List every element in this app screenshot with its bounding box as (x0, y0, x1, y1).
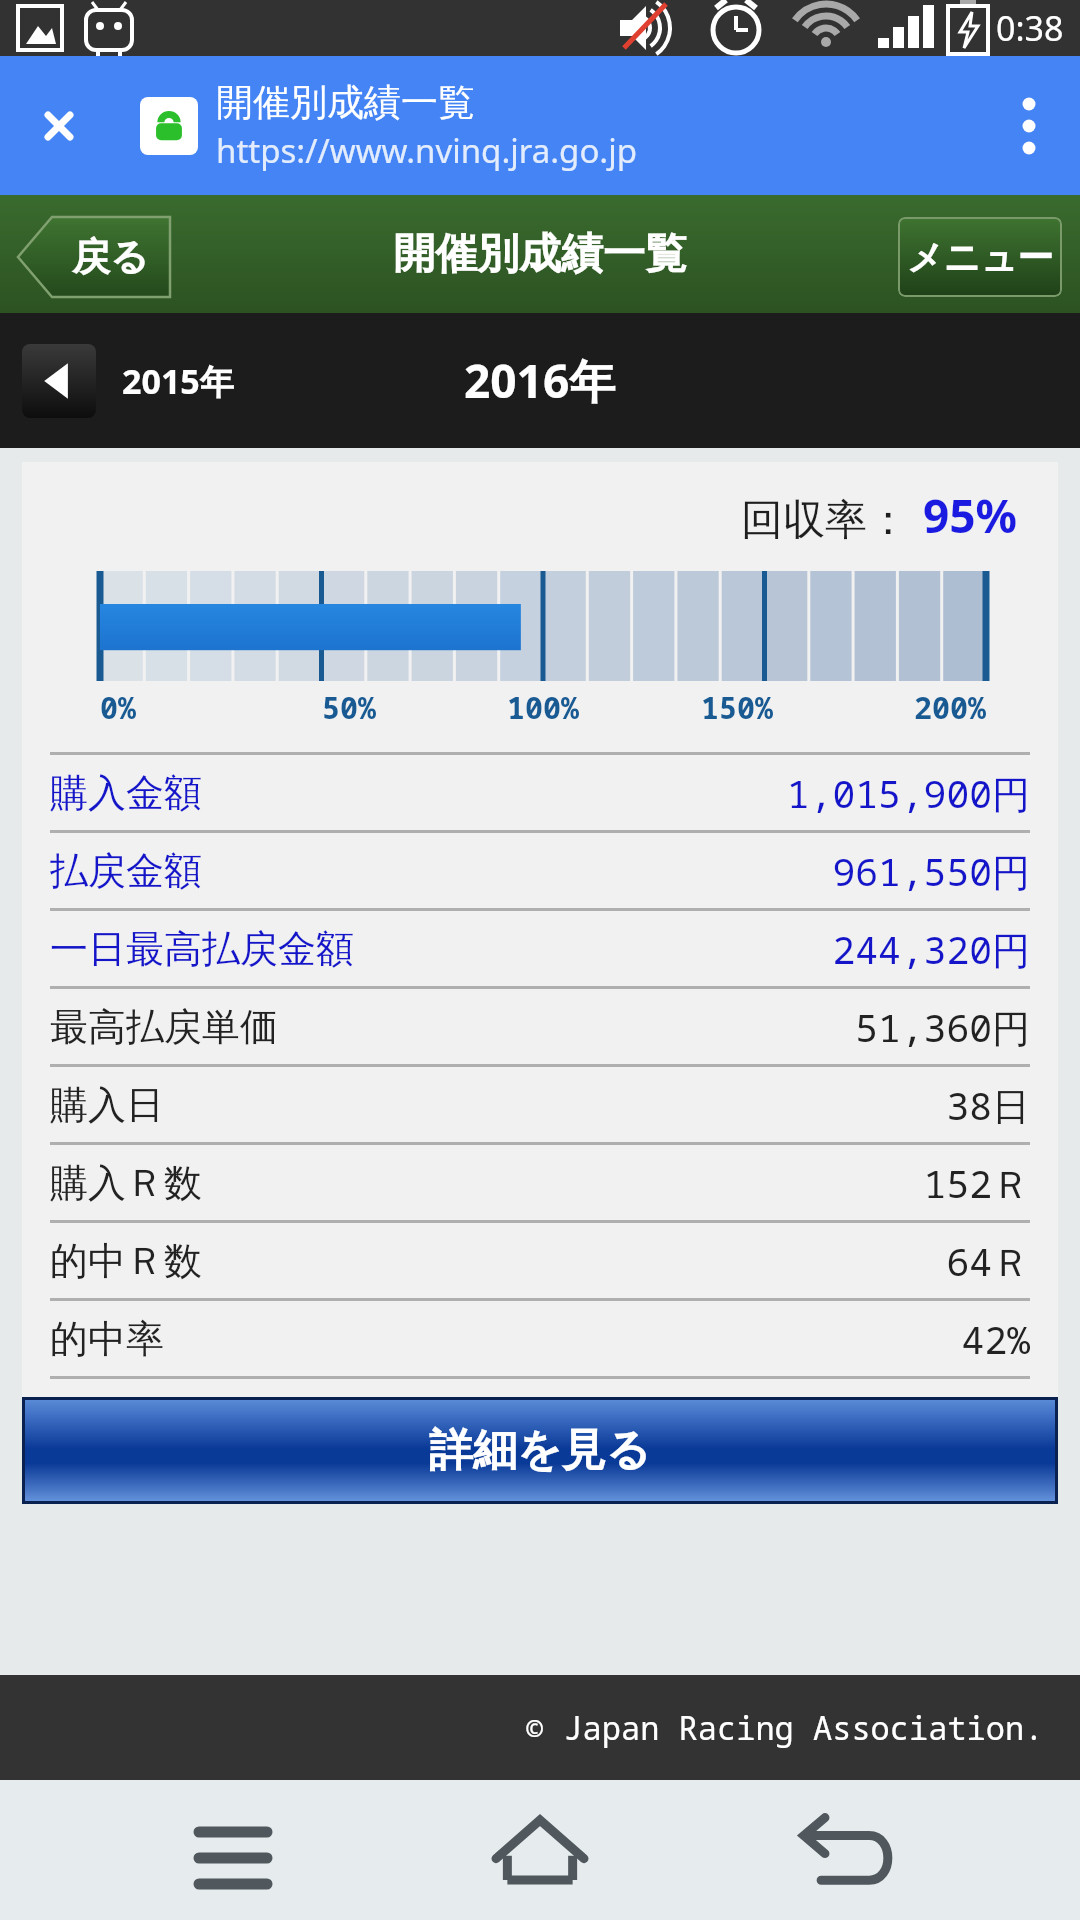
staticText: 開催別成績一覧 (216, 79, 475, 126)
button[interactable]: Close (22, 89, 96, 163)
button[interactable]: 購入日 (50, 1067, 1030, 1142)
staticText: 38日 (946, 1079, 1030, 1131)
staticText: © Japan Racing Association. (525, 1706, 1044, 1750)
staticText: 戻る (72, 233, 149, 281)
button[interactable]: 一日最高払戻金額 (50, 911, 1030, 986)
button[interactable]: Menu (158, 1780, 308, 1920)
button[interactable]: More options (994, 91, 1064, 161)
button[interactable]: 的中率 (50, 1301, 1030, 1376)
button[interactable]: 払戻金額 (50, 833, 1030, 908)
button[interactable]: 戻る (18, 217, 178, 297)
staticText: 開催別成績一覧 (393, 228, 687, 281)
staticText: 購入Ｒ数 (50, 1159, 202, 1207)
staticText: 一日最高払戻金額 (50, 925, 354, 973)
button[interactable]: 購入Ｒ数 (50, 1145, 1030, 1220)
staticText: 購入金額 (50, 769, 202, 817)
staticText: 2015年 (122, 358, 234, 404)
staticText: 回収率： (741, 494, 909, 547)
button[interactable]: Back (773, 1780, 923, 1920)
button[interactable]: 購入金額 (50, 755, 1030, 830)
staticText: 的中Ｒ数 (50, 1237, 202, 1285)
staticText: 51,360円 (855, 1001, 1030, 1053)
staticText: 244,320円 (832, 923, 1030, 975)
staticText: 152Ｒ (923, 1157, 1030, 1209)
staticText: 100% (507, 687, 579, 728)
staticText: メニュー (907, 235, 1054, 280)
staticText: 払戻金額 (50, 847, 202, 895)
staticText: 1,015,900円 (786, 767, 1030, 819)
staticText: 最高払戻単価 (50, 1003, 278, 1051)
staticText: https://www.nvinq.jra.go.jp (216, 128, 638, 173)
staticText: 購入日 (50, 1081, 164, 1129)
staticText: 42% (961, 1313, 1030, 1365)
staticText: 64Ｒ (946, 1235, 1030, 1287)
staticText: 95% (923, 484, 1018, 547)
button[interactable]: 最高払戻単価 (50, 989, 1030, 1064)
staticText: 的中率 (50, 1315, 164, 1363)
button[interactable]: メニュー (898, 217, 1062, 297)
staticText: 50% (322, 687, 376, 728)
button[interactable]: Home (465, 1780, 615, 1920)
staticText: 200% (914, 687, 986, 728)
button[interactable]: Previous year (22, 344, 96, 418)
staticText: 2016年 (464, 349, 616, 412)
button[interactable]: 詳細を見る (22, 1397, 1058, 1504)
button[interactable]: 的中Ｒ数 (50, 1223, 1030, 1298)
staticText: 0:38 (996, 5, 1064, 51)
staticText: 961,550円 (832, 845, 1030, 897)
staticText: 150% (701, 687, 773, 728)
staticText: 0% (100, 687, 136, 728)
staticText: 詳細を見る (429, 1423, 652, 1478)
